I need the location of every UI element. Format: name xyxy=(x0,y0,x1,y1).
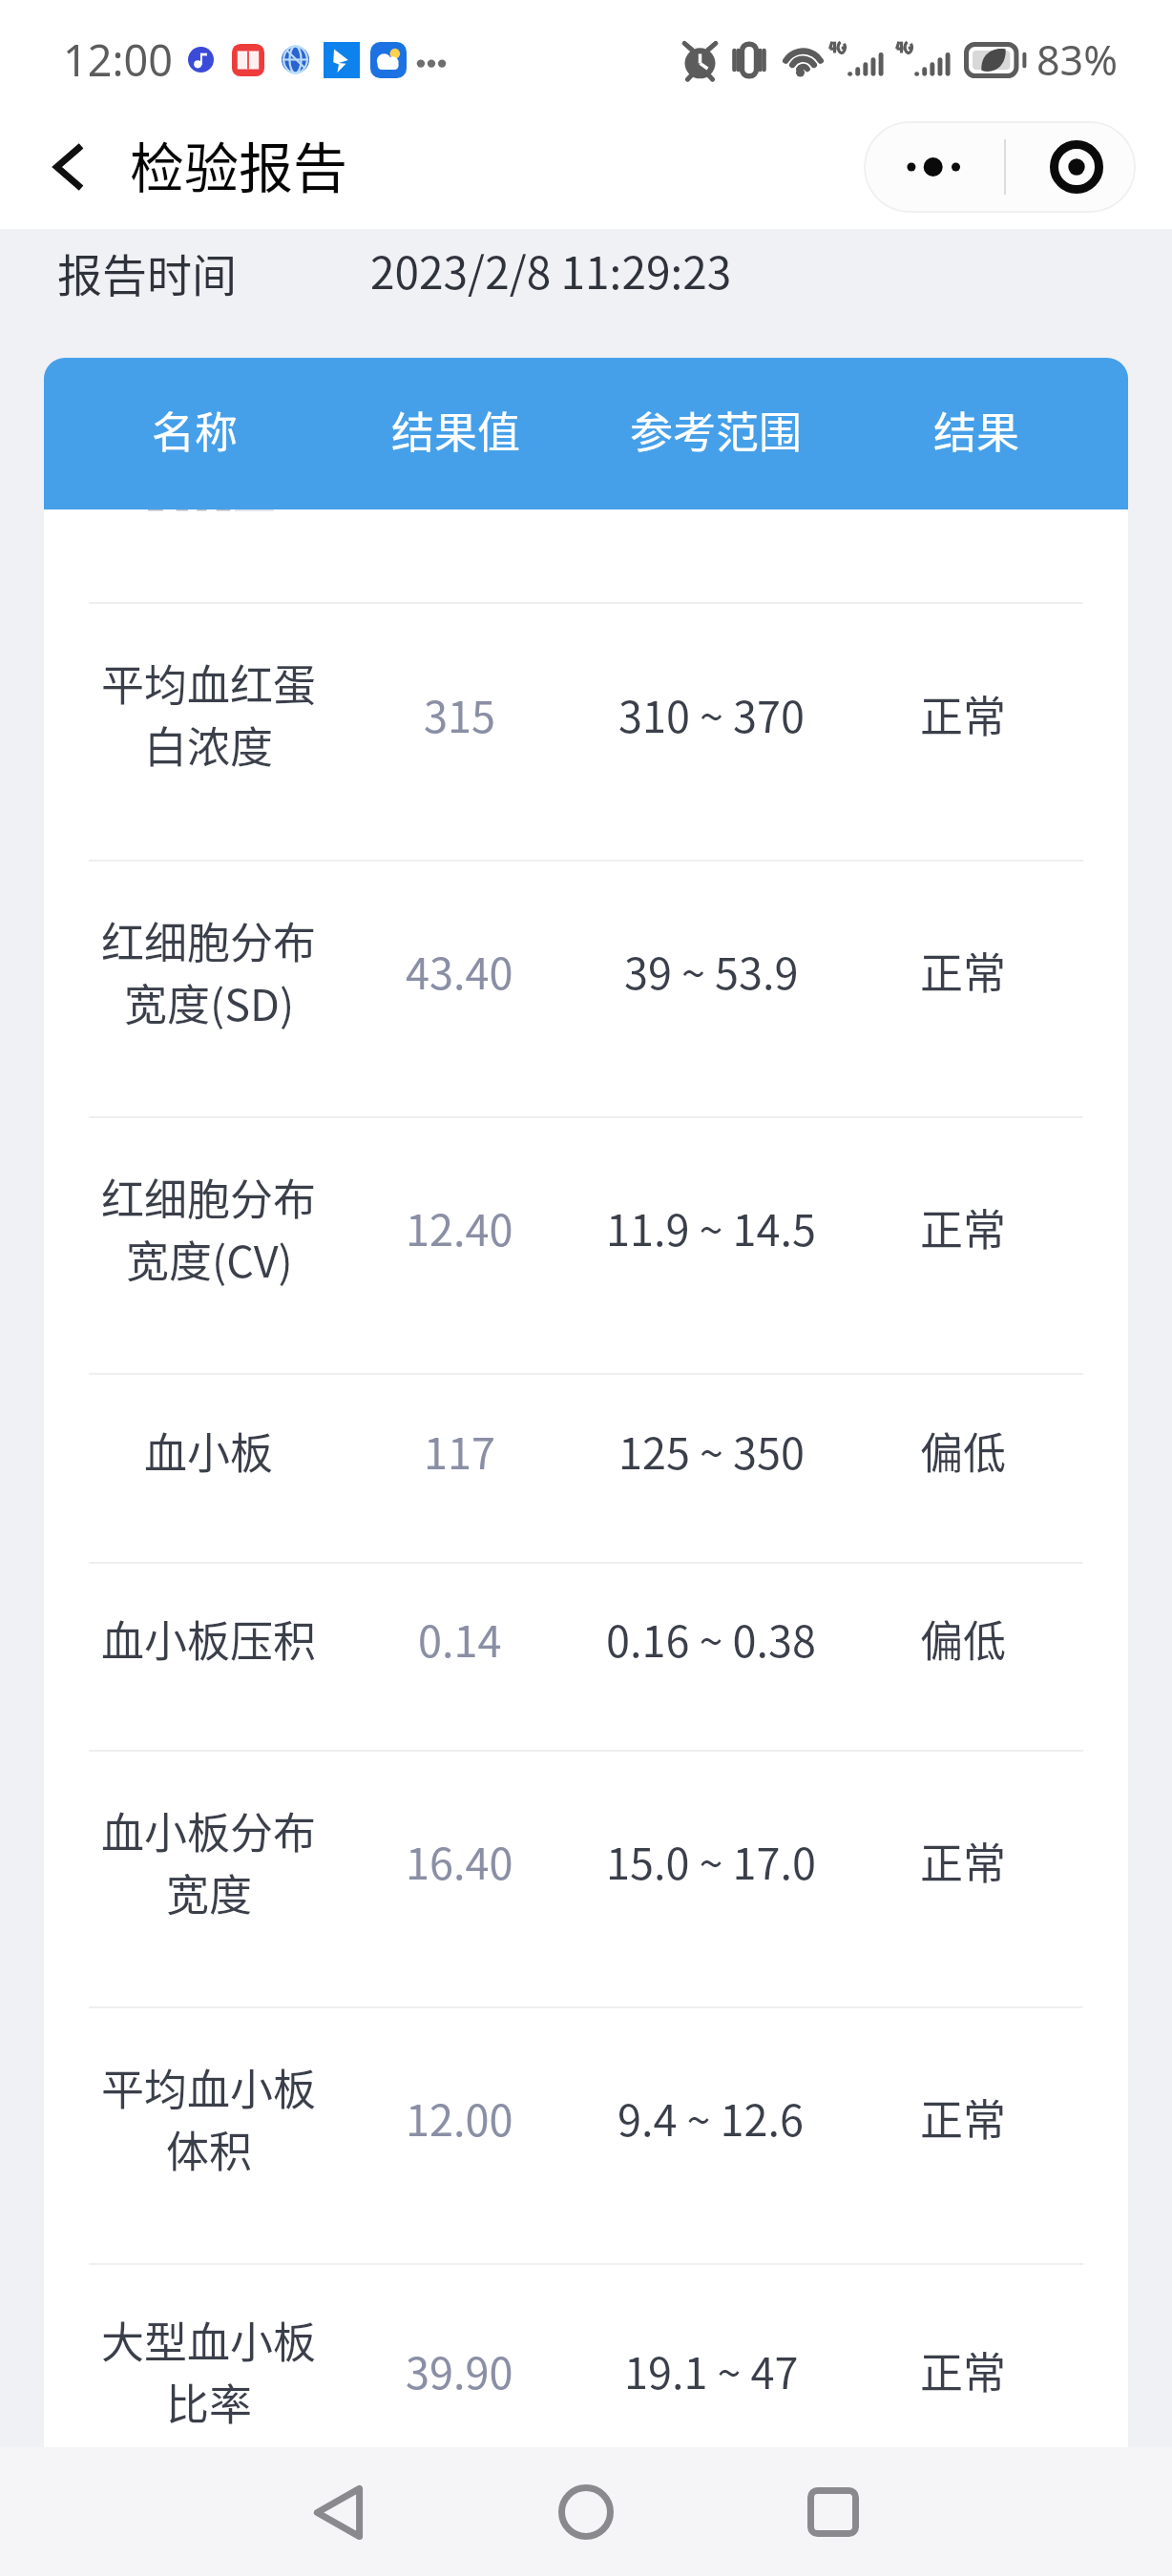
staticText: 名称 xyxy=(152,399,239,461)
staticText: 宽度(SD) xyxy=(124,971,295,1033)
staticText: 39 ~ 53.9 xyxy=(624,940,799,1002)
button[interactable]: Close mini program xyxy=(1000,121,1136,213)
staticText: 检验报告 xyxy=(130,125,347,204)
staticText: 125 ~ 350 xyxy=(618,1420,805,1482)
button[interactable]: 平均血红蛋 xyxy=(44,604,1128,860)
staticText: 宽度 xyxy=(166,1861,253,1923)
staticText: 12:00 xyxy=(63,31,174,89)
staticText: 正常 xyxy=(920,2339,1007,2401)
button[interactable]: Home xyxy=(524,2450,648,2574)
staticText: 偏低 xyxy=(920,1420,1007,1482)
staticText: 正常 xyxy=(920,2087,1007,2149)
button[interactable]: Back xyxy=(31,129,107,205)
staticText: 报告时间 xyxy=(57,239,237,304)
staticText: 血小板分布 xyxy=(101,1799,317,1861)
staticText: 比率 xyxy=(166,2371,253,2433)
staticText: 310 ~ 370 xyxy=(618,683,805,745)
staticText: 315 xyxy=(424,683,495,745)
staticText: 正常 xyxy=(920,683,1007,745)
staticText: 43.40 xyxy=(406,940,513,1002)
staticText: 2023/2/8 11:29:23 xyxy=(370,239,732,302)
staticText: 正常 xyxy=(920,1830,1007,1892)
staticText: 平均血小板 xyxy=(101,2056,317,2118)
staticText: 11.9 ~ 14.5 xyxy=(606,1196,817,1258)
staticText: 白浓度 xyxy=(144,714,274,776)
staticText: 117 xyxy=(424,1420,495,1482)
staticText: 大型血小板 xyxy=(101,2309,317,2371)
staticText: 偏低 xyxy=(920,1608,1007,1670)
staticText: 0.16 ~ 0.38 xyxy=(606,1608,817,1670)
button[interactable]: More options xyxy=(864,121,998,213)
staticText: 39.90 xyxy=(406,2339,513,2401)
button[interactable]: 血小板 xyxy=(44,1375,1128,1562)
staticText: 结果 xyxy=(933,399,1020,461)
button[interactable]: 红细胞分布 xyxy=(44,862,1128,1116)
staticText: 83% xyxy=(1036,31,1118,88)
button[interactable]: 大型血小板 xyxy=(44,2265,1128,2447)
button[interactable]: Back xyxy=(277,2450,401,2574)
staticText: 12.00 xyxy=(406,2087,513,2149)
staticText: 15.0 ~ 17.0 xyxy=(606,1830,817,1892)
staticText: 体积 xyxy=(166,2118,253,2180)
button[interactable]: 平均血小板 xyxy=(44,2008,1128,2263)
staticText: 19.1 ~ 47 xyxy=(624,2339,799,2401)
staticText: 参考范围 xyxy=(630,399,803,461)
staticText: 结果值 xyxy=(391,399,521,461)
staticText: 正常 xyxy=(920,940,1007,1002)
button[interactable]: Recent apps xyxy=(771,2450,895,2574)
staticText: 平均血红蛋 xyxy=(101,652,317,714)
staticText: 血小板压积 xyxy=(101,1608,317,1670)
staticText: 正常 xyxy=(920,1196,1007,1258)
button[interactable]: 血小板分布 xyxy=(44,1752,1128,2006)
staticText: 9.4 ~ 12.6 xyxy=(617,2087,805,2149)
staticText: 0.14 xyxy=(418,1608,502,1670)
staticText: 宽度(CV) xyxy=(126,1228,293,1290)
staticText: 红细胞分布 xyxy=(101,909,317,971)
staticText: 16.40 xyxy=(406,1830,513,1892)
button[interactable]: 血小板压积 xyxy=(44,1564,1128,1750)
staticText: 血小板 xyxy=(144,1420,274,1482)
staticText: 红细胞分布 xyxy=(101,1166,317,1228)
staticText: 12.40 xyxy=(406,1196,513,1258)
button[interactable]: 红细胞分布 xyxy=(44,1118,1128,1373)
